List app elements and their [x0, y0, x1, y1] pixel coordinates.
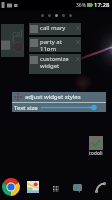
staticText: party at 11pm	[40, 38, 76, 51]
other: Delete	[76, 40, 80, 44]
staticText: 17:28	[94, 1, 110, 9]
other: Delete	[76, 57, 80, 61]
button[interactable]: Chrome	[2, 178, 20, 196]
button[interactable]: cal	[1, 24, 24, 57]
other: Delete	[76, 26, 80, 30]
button[interactable]: todoli	[88, 136, 104, 157]
staticText: adjust widget styles	[25, 93, 81, 101]
button[interactable]: party at 11pm	[29, 39, 81, 52]
button[interactable]: Messages	[73, 184, 82, 193]
button[interactable]: customize widget	[29, 56, 81, 74]
button[interactable]	[41, 103, 104, 112]
staticText: cal	[12, 28, 23, 39]
button[interactable]: Maps	[27, 181, 39, 193]
staticText: call mary	[40, 24, 76, 32]
other: Move widget	[14, 93, 22, 101]
staticText: todoli	[89, 150, 103, 157]
button[interactable]: call mary	[29, 25, 81, 35]
staticText: Text size	[14, 104, 38, 112]
button[interactable]: Phone	[95, 182, 106, 193]
button[interactable]: Move widget	[12, 92, 106, 102]
staticText: customize widget	[40, 55, 76, 70]
button[interactable]: All apps	[53, 186, 59, 192]
staticText: 36%	[76, 2, 86, 9]
